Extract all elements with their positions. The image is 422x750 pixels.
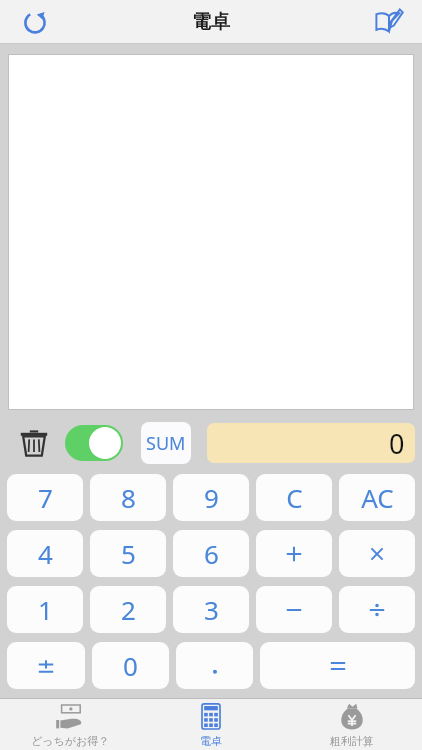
button[interactable]: 5 xyxy=(90,530,166,577)
button[interactable]: AC xyxy=(339,474,415,521)
staticText: 3 xyxy=(204,592,219,627)
button[interactable]: 1 xyxy=(7,586,83,633)
button[interactable]: 0 xyxy=(207,423,415,463)
button[interactable]: 7 xyxy=(7,474,83,521)
button[interactable] xyxy=(256,586,332,633)
staticText: 電卓 xyxy=(192,10,230,34)
button[interactable]: Toggle sum mode xyxy=(65,425,123,461)
staticText: 1 xyxy=(38,592,53,627)
button[interactable]: 2 xyxy=(90,586,166,633)
staticText: どっちがお得？ xyxy=(31,734,110,748)
button[interactable]: SUM xyxy=(141,422,191,464)
staticText: 7 xyxy=(38,480,53,515)
button[interactable]: 0 xyxy=(92,642,169,689)
button[interactable]: 3 xyxy=(173,586,249,633)
staticText: C xyxy=(286,480,303,515)
button[interactable] xyxy=(260,642,415,689)
staticText: 4 xyxy=(38,536,53,571)
button[interactable] xyxy=(339,530,415,577)
staticText: 2 xyxy=(121,592,136,627)
button[interactable]: C xyxy=(256,474,332,521)
button[interactable] xyxy=(176,642,253,689)
staticText: 電卓 xyxy=(200,734,222,748)
button[interactable]: 電卓 xyxy=(140,699,281,750)
staticText: 0 xyxy=(389,425,405,462)
button[interactable]: 粗利計算 xyxy=(281,699,422,750)
staticText: 0 xyxy=(123,648,138,683)
button[interactable] xyxy=(339,586,415,633)
staticText: AC xyxy=(361,480,394,515)
button[interactable] xyxy=(256,530,332,577)
staticText: 8 xyxy=(121,480,136,515)
button[interactable]: Notebook xyxy=(368,1,410,43)
staticText: 粗利計算 xyxy=(330,734,374,748)
button[interactable]: Delete xyxy=(15,424,53,462)
button[interactable]: 4 xyxy=(7,530,83,577)
button[interactable]: Refresh xyxy=(14,1,56,43)
staticText: 5 xyxy=(121,536,136,571)
staticText: 9 xyxy=(204,480,219,515)
staticText: 6 xyxy=(204,536,219,571)
button[interactable]: どっちがお得？ xyxy=(0,699,140,750)
button[interactable]: 9 xyxy=(173,474,249,521)
staticText: SUM xyxy=(146,431,186,456)
button[interactable]: 8 xyxy=(90,474,166,521)
button[interactable]: 6 xyxy=(173,530,249,577)
button[interactable] xyxy=(7,642,85,689)
